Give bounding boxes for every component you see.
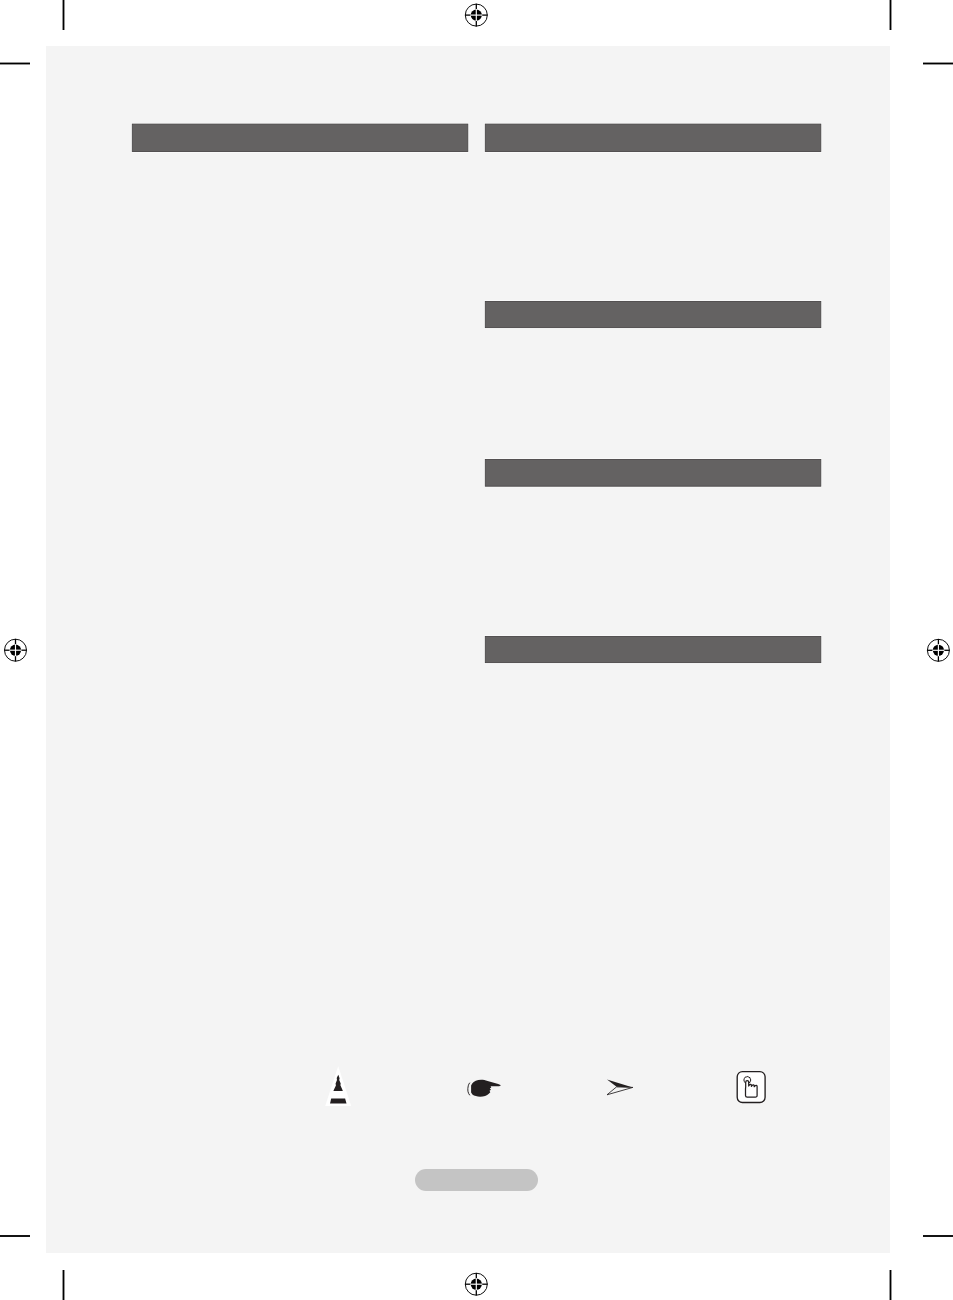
button[interactable]: Warning (320, 1062, 356, 1108)
button[interactable]: Pointing hand (462, 1072, 504, 1100)
button[interactable]: Send (600, 1074, 640, 1098)
button[interactable]: Continue (415, 1169, 538, 1191)
button[interactable]: Tap gesture (735, 1070, 767, 1104)
